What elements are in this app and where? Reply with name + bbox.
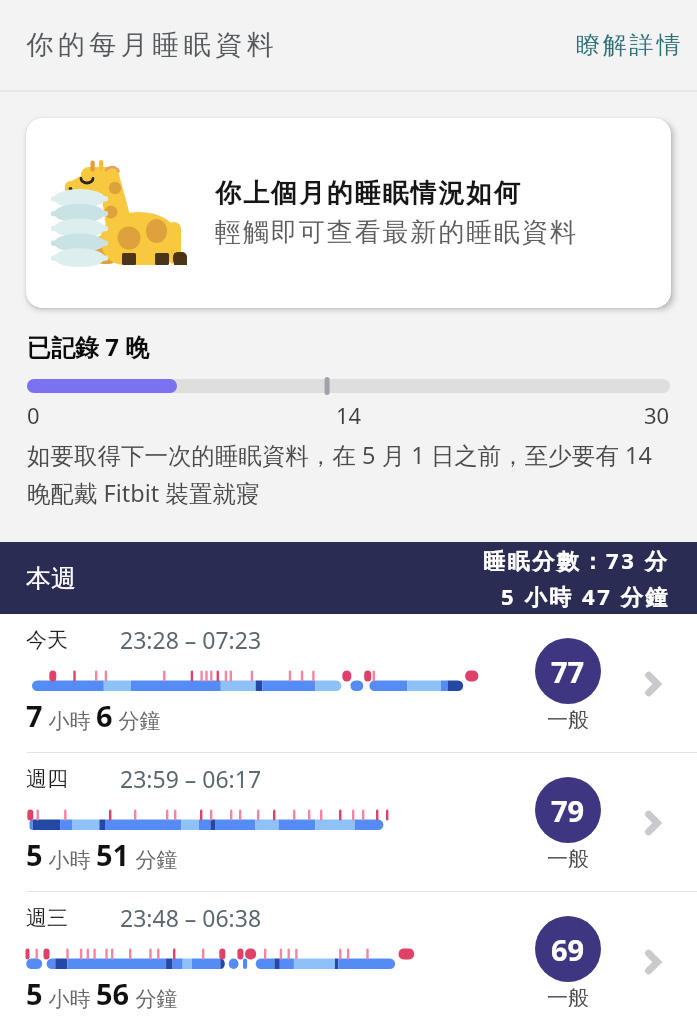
- button[interactable]: 查看詳情: [631, 801, 675, 845]
- button[interactable]: 週三: [0, 892, 697, 1024]
- staticText: 5 小時 47 分鐘: [501, 581, 670, 611]
- staticText: 小時: [43, 706, 96, 735]
- staticText: 小時: [43, 845, 96, 874]
- staticText: 23:28 – 07:23: [120, 624, 262, 655]
- staticText: 51: [96, 835, 130, 874]
- staticText: 今天: [26, 627, 68, 653]
- staticText: 6: [96, 696, 113, 735]
- button[interactable]: 瞭解詳情: [556, 16, 697, 74]
- staticText: 一般: [547, 846, 589, 872]
- staticText: 你的每月睡眠資料: [24, 28, 276, 62]
- staticText: 14: [336, 400, 362, 430]
- staticText: 已記錄 7 晚: [27, 330, 150, 363]
- staticText: 分鐘: [113, 706, 161, 735]
- staticText: 本週: [26, 563, 76, 594]
- button[interactable]: 查看詳情: [631, 662, 675, 706]
- staticText: 5: [26, 835, 43, 874]
- button[interactable]: 查看詳情: [631, 940, 675, 984]
- button[interactable]: 你上個月的睡眠情況如何: [26, 118, 671, 308]
- staticText: 23:59 – 06:17: [120, 763, 262, 794]
- staticText: 週三: [26, 905, 68, 931]
- staticText: 7: [26, 696, 43, 735]
- staticText: 如要取得下一次的睡眠資料，在 5 月 1 日之前，至少要有 14 晚配戴 Fit…: [27, 439, 660, 509]
- staticText: 30: [644, 400, 670, 430]
- staticText: 23:48 – 06:38: [120, 902, 262, 933]
- staticText: 睡眠分數：73 分: [483, 545, 670, 575]
- button[interactable]: 週四: [0, 753, 697, 891]
- staticText: 週四: [26, 766, 68, 792]
- staticText: 0: [27, 400, 40, 430]
- staticText: 小時: [43, 984, 96, 1013]
- staticText: 輕觸即可查看最新的睡眠資料: [215, 216, 578, 249]
- staticText: 一般: [547, 707, 589, 733]
- staticText: 56: [96, 974, 130, 1013]
- staticText: 77: [551, 652, 585, 691]
- staticText: 69: [551, 930, 585, 969]
- staticText: 你上個月的睡眠情況如何: [215, 177, 522, 210]
- staticText: 5: [26, 974, 43, 1013]
- staticText: 分鐘: [130, 984, 178, 1013]
- button[interactable]: 今天: [0, 614, 697, 752]
- staticText: 79: [551, 791, 585, 830]
- staticText: 分鐘: [130, 845, 178, 874]
- staticText: 瞭解詳情: [576, 30, 684, 60]
- staticText: 一般: [547, 985, 589, 1011]
